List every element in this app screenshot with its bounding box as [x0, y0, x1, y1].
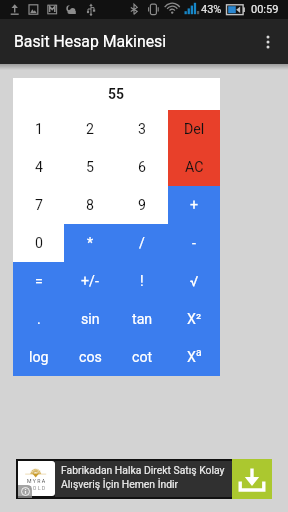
button[interactable]: = [13, 262, 64, 300]
staticText: * [87, 235, 94, 252]
button[interactable]: 3 [116, 110, 168, 148]
staticText: M Y R A [27, 478, 46, 484]
other: Ad information [18, 485, 32, 498]
button[interactable]: 5 [64, 148, 116, 186]
staticText: sin [81, 311, 100, 328]
staticText: 2 [86, 121, 94, 138]
staticText: G O L D [28, 485, 46, 491]
button[interactable]: tan [116, 300, 168, 338]
staticText: . [37, 311, 41, 328]
button[interactable]: log [13, 338, 64, 376]
button[interactable]: ! [116, 262, 168, 300]
staticText: + [190, 197, 199, 214]
button[interactable]: 9 [116, 186, 168, 224]
staticText: a [196, 347, 202, 359]
staticText: 8 [86, 197, 94, 214]
staticText: 9 [138, 197, 146, 214]
button[interactable]: 4 [13, 148, 64, 186]
staticText: X² [187, 311, 202, 328]
staticText: AC [185, 159, 204, 176]
staticText: 55 [108, 86, 125, 102]
staticText: 4 [35, 159, 43, 176]
staticText: cot [132, 349, 153, 366]
button[interactable]: 1 [13, 110, 64, 148]
button[interactable]: 6 [116, 148, 168, 186]
button[interactable]: + [168, 186, 220, 224]
staticText: - [192, 235, 196, 252]
staticText: 1 [35, 121, 43, 138]
button[interactable]: More options [248, 22, 288, 62]
button[interactable]: / [116, 224, 168, 262]
button[interactable]: X² [168, 300, 220, 338]
button[interactable]: 8 [64, 186, 116, 224]
button[interactable]: sin [64, 300, 116, 338]
button[interactable]: * [64, 224, 116, 262]
button[interactable]: +/- [64, 262, 116, 300]
staticText: 00:59 [251, 3, 279, 16]
button[interactable]: X [168, 338, 220, 376]
staticText: Basit Hesap Makinesi [14, 32, 167, 51]
button[interactable]: - [168, 224, 220, 262]
button[interactable]: . [13, 300, 64, 338]
staticText: = [35, 273, 43, 290]
staticText: log [29, 349, 49, 366]
button[interactable]: √ [168, 262, 220, 300]
staticText: 5 [86, 159, 94, 176]
staticText: Alışveriş İçin Hemen İndir [61, 478, 179, 490]
button[interactable]: M Y R A [16, 459, 272, 499]
staticText: X [187, 349, 196, 366]
staticText: 3 [138, 121, 146, 138]
staticText: Fabrikadan Halka Direkt Satış Kolay [61, 464, 225, 476]
staticText: 0 [35, 235, 43, 252]
button[interactable]: AC [168, 148, 220, 186]
staticText: ! [140, 273, 144, 290]
staticText: 7 [35, 197, 43, 214]
staticText: 43% [201, 3, 222, 16]
button[interactable]: 7 [13, 186, 64, 224]
staticText: Del [184, 121, 205, 138]
button[interactable]: cot [116, 338, 168, 376]
staticText: +/- [81, 273, 99, 290]
button[interactable]: Del [168, 110, 220, 148]
staticText: √ [190, 273, 199, 290]
staticText: / [139, 235, 145, 252]
button[interactable]: cos [64, 338, 116, 376]
staticText: cos [79, 349, 102, 366]
staticText: tan [132, 311, 153, 328]
button[interactable]: 0 [13, 224, 64, 262]
button[interactable]: 2 [64, 110, 116, 148]
staticText: 6 [138, 159, 146, 176]
